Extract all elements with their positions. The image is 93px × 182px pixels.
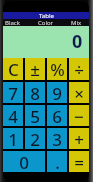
staticText: % — [50, 58, 65, 80]
button[interactable]: 1 — [3, 128, 23, 149]
button[interactable]: 5 — [25, 105, 45, 126]
staticText: × — [74, 82, 84, 103]
button[interactable]: − — [69, 105, 89, 126]
staticText: 4 — [8, 105, 18, 126]
staticText: . — [55, 151, 60, 172]
button[interactable]: = — [69, 151, 89, 172]
button[interactable]: Color — [37, 19, 55, 26]
button[interactable]: 4 — [3, 105, 23, 126]
staticText: Table — [39, 12, 54, 19]
button[interactable]: 6 — [47, 105, 67, 126]
staticText: Color — [38, 19, 54, 26]
staticText: 0 — [19, 151, 29, 172]
staticText: 5 — [30, 105, 40, 126]
button[interactable]: % — [47, 58, 67, 80]
staticText: ± — [30, 58, 40, 80]
staticText: 3 — [52, 128, 62, 149]
button[interactable]: × — [69, 82, 89, 103]
staticText: 1 — [8, 128, 18, 149]
staticText: 7 — [8, 82, 18, 103]
staticText: = — [74, 151, 84, 172]
staticText: Black — [5, 19, 20, 26]
staticText: ÷ — [74, 58, 84, 80]
staticText: 9 — [52, 82, 62, 103]
staticText: + — [74, 128, 84, 149]
button[interactable]: 2 — [25, 128, 45, 149]
button[interactable]: 7 — [3, 82, 23, 103]
button[interactable]: ÷ — [69, 58, 89, 80]
button[interactable]: + — [69, 128, 89, 149]
staticText: Mix — [71, 19, 82, 26]
button[interactable]: Mix — [70, 19, 83, 26]
button[interactable]: C — [3, 58, 23, 80]
button[interactable]: 0 — [3, 151, 45, 172]
staticText: C — [8, 58, 19, 80]
staticText: 0 — [72, 29, 83, 54]
staticText: 2 — [30, 128, 40, 149]
button[interactable]: ± — [25, 58, 45, 80]
staticText: − — [74, 105, 84, 126]
button[interactable]: 3 — [47, 128, 67, 149]
staticText: 6 — [52, 105, 62, 126]
button[interactable]: Black — [4, 19, 21, 26]
staticText: 8 — [30, 82, 40, 103]
button[interactable]: 8 — [25, 82, 45, 103]
button[interactable]: . — [47, 151, 67, 172]
button[interactable]: 9 — [47, 82, 67, 103]
